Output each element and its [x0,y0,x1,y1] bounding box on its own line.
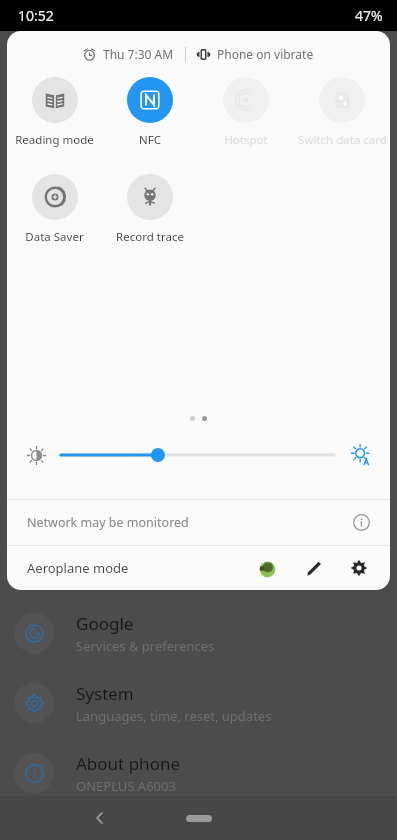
button[interactable]: System [0,668,397,738]
staticText: Hotspot [224,132,268,148]
staticText: 10:52 [18,6,54,25]
staticText: System [76,682,134,705]
button[interactable]: Low brightness [19,438,53,472]
button[interactable]: Network may be monitored [7,500,390,545]
staticText: Languages, time, reset, updates [76,707,272,725]
staticText: Network may be monitored [27,514,189,531]
button[interactable]: Settings [342,551,376,585]
staticText: Phone on vibrate [217,46,314,62]
button[interactable] [61,440,334,470]
button[interactable]: Google [0,598,397,668]
staticText: Google [76,612,134,635]
button[interactable]: Hotspot [198,75,294,150]
staticText: ONEPLUS A6003 [76,777,176,795]
button[interactable]: User [250,551,284,585]
button[interactable]: Back [84,802,116,834]
staticText: Aeroplane mode [27,559,129,577]
staticText: NFC [139,132,161,148]
button[interactable]: Aeroplane mode [27,559,129,577]
staticText: 47% [355,6,383,25]
staticText: Switch data card [298,132,387,148]
staticText: Record trace [116,229,184,245]
button[interactable]: Edit tiles [297,551,331,585]
button[interactable]: Switch data card [294,75,390,150]
staticText: Services & preferences [76,637,215,655]
button[interactable]: Auto brightness [344,438,378,472]
staticText: Reading mode [15,132,94,148]
staticText: About phone [76,752,181,775]
button[interactable]: Record trace [102,172,198,247]
button[interactable]: Reading mode [7,75,102,150]
staticText: Data Saver [25,229,84,245]
staticText: Thu 7:30 AM [103,46,174,62]
button[interactable]: Data Saver [7,172,102,247]
button[interactable]: About phone [0,738,397,808]
button[interactable]: Home [185,811,213,825]
button[interactable]: NFC [102,75,198,150]
